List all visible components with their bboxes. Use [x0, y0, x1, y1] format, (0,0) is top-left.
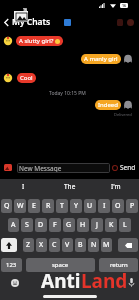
staticText: W: [17, 201, 24, 211]
staticText: K: [109, 220, 114, 230]
staticText: P: [130, 201, 135, 211]
button[interactable]: I: [0, 182, 47, 191]
staticText: Delivered: [114, 112, 132, 117]
staticText: M: [103, 240, 110, 250]
staticText: I: [22, 182, 25, 191]
staticText: E: [32, 201, 36, 211]
button[interactable]: O: [112, 199, 124, 213]
button[interactable]: Verified: [64, 19, 71, 26]
staticText: A: [11, 220, 16, 230]
button[interactable]: The: [47, 182, 93, 191]
staticText: I'm: [111, 182, 121, 191]
staticText: X: [39, 240, 44, 250]
staticText: space: [52, 261, 69, 269]
button[interactable]: Notifications: [114, 17, 125, 28]
staticText: Indeed: [98, 101, 118, 109]
button[interactable]: J: [91, 218, 103, 232]
button[interactable]: P: [126, 199, 138, 213]
button[interactable]: V: [62, 238, 73, 252]
button[interactable]: X: [36, 238, 47, 252]
button[interactable]: Cool: [17, 73, 36, 83]
button[interactable]: I: [98, 199, 110, 213]
button[interactable]: B: [75, 238, 86, 252]
staticText: Y: [74, 201, 78, 211]
button[interactable]: Attach photo: [4, 164, 12, 171]
button[interactable]: S: [21, 218, 33, 232]
staticText: My Chats: [12, 16, 51, 28]
button[interactable]: G: [63, 218, 75, 232]
button[interactable]: Indeed: [95, 100, 121, 110]
staticText: Send: [120, 163, 136, 172]
staticText: Q: [4, 201, 10, 211]
staticText: I: [103, 201, 106, 211]
button[interactable]: K: [105, 218, 117, 232]
button[interactable]: D: [35, 218, 47, 232]
button[interactable]: More options: [125, 17, 136, 28]
button[interactable]: A manly girl: [81, 54, 121, 64]
staticText: V: [65, 240, 70, 250]
staticText: Cool: [20, 74, 33, 82]
staticText: Land: [81, 268, 128, 294]
staticText: 16: [23, 7, 28, 11]
button[interactable]: L: [119, 218, 131, 232]
staticText: 16: [122, 3, 127, 8]
staticText: return: [110, 261, 128, 269]
staticText: T: [60, 201, 64, 211]
button[interactable]: Q: [1, 199, 12, 213]
button[interactable]: U: [84, 199, 96, 213]
staticText: D: [38, 220, 44, 230]
staticText: N: [91, 240, 97, 250]
staticText: A slutty girl?: [19, 37, 54, 45]
button[interactable]: space: [26, 258, 95, 272]
button[interactable]: A slutty girl?: [16, 36, 63, 46]
button[interactable]: F: [49, 218, 61, 232]
button[interactable]: M: [101, 238, 112, 252]
button[interactable]: New Message: [17, 163, 110, 173]
staticText: B: [78, 240, 83, 250]
staticText: F: [53, 220, 57, 230]
button[interactable]: 123: [1, 258, 22, 272]
staticText: O: [115, 201, 121, 211]
button[interactable]: return: [99, 258, 138, 272]
button[interactable]: Backspace: [118, 238, 138, 252]
staticText: Z: [26, 240, 31, 250]
button[interactable]: R: [42, 199, 54, 213]
button[interactable]: H: [77, 218, 89, 232]
button[interactable]: N: [88, 238, 99, 252]
button[interactable]: I'm: [93, 182, 139, 191]
staticText: G: [66, 220, 72, 230]
staticText: A manly girl: [84, 55, 118, 63]
button[interactable]: Shift: [1, 238, 17, 252]
staticText: R: [46, 201, 51, 211]
button[interactable]: E: [28, 199, 40, 213]
button[interactable]: A: [8, 218, 19, 232]
button[interactable]: W: [14, 199, 26, 213]
button[interactable]: Y: [70, 199, 82, 213]
button[interactable]: C: [49, 238, 60, 252]
button[interactable]: T: [56, 199, 68, 213]
staticText: Anti: [41, 268, 81, 294]
staticText: 123: [6, 261, 17, 269]
button[interactable]: Emoji: [11, 279, 19, 287]
button[interactable]: Back: [1, 17, 12, 28]
button[interactable]: Send: [111, 163, 137, 172]
staticText: H: [80, 220, 86, 230]
staticText: C: [52, 240, 57, 250]
staticText: J: [96, 220, 98, 230]
button[interactable]: Microphone: [128, 277, 135, 287]
staticText: New Message: [19, 164, 62, 173]
staticText: U: [87, 201, 93, 211]
staticText: The: [64, 182, 76, 191]
staticText: Today 10:15 PM: [49, 90, 86, 97]
staticText: S: [25, 220, 29, 230]
staticText: L: [123, 220, 127, 230]
button[interactable]: Z: [23, 238, 34, 252]
